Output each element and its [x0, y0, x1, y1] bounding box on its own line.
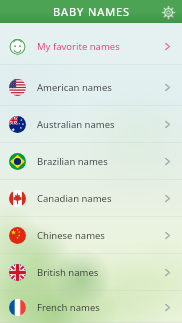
- staticText: Australian names: [37, 118, 115, 131]
- staticText: My favorite names: [37, 40, 120, 53]
- staticText: Chinese names: [37, 229, 105, 242]
- staticText: French names: [37, 301, 100, 314]
- button[interactable]: Settings: [159, 3, 177, 21]
- button[interactable]: Canadian names: [0, 180, 182, 217]
- button[interactable]: Brazilian names: [0, 143, 182, 180]
- staticText: American names: [37, 81, 112, 94]
- staticText: British names: [37, 266, 99, 279]
- button[interactable]: American names: [0, 69, 182, 106]
- button[interactable]: British names: [0, 254, 182, 291]
- staticText: BABY NAMES: [53, 4, 130, 19]
- button[interactable]: Australian names: [0, 106, 182, 143]
- staticText: Brazilian names: [37, 155, 108, 168]
- button[interactable]: My favorite names: [0, 28, 182, 65]
- button[interactable]: Chinese names: [0, 217, 182, 254]
- staticText: Canadian names: [37, 192, 112, 205]
- button[interactable]: French names: [0, 291, 182, 323]
